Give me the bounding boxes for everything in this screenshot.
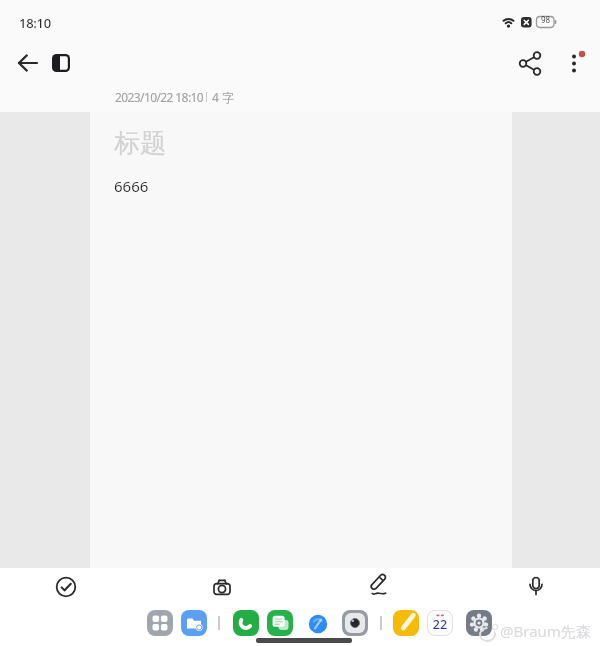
- button[interactable]: [233, 610, 259, 636]
- button[interactable]: [342, 610, 368, 636]
- button[interactable]: [267, 610, 293, 636]
- button[interactable]: [10, 45, 46, 81]
- button[interactable]: [512, 45, 548, 81]
- staticText: @Braum先森: [500, 621, 591, 641]
- button[interactable]: [44, 45, 80, 81]
- button[interactable]: [518, 569, 554, 605]
- button[interactable]: [181, 610, 207, 636]
- staticText: 6666: [114, 176, 149, 196]
- button[interactable]: [147, 610, 173, 636]
- button[interactable]: [360, 567, 396, 603]
- staticText: 标题: [114, 127, 166, 160]
- staticText: 4 字: [212, 89, 234, 105]
- staticText: 18:10: [19, 14, 51, 32]
- button[interactable]: [427, 610, 453, 636]
- button[interactable]: [556, 45, 592, 81]
- button[interactable]: [466, 610, 492, 636]
- staticText: 22: [427, 616, 453, 633]
- staticText: 98: [541, 14, 551, 25]
- button[interactable]: [48, 569, 84, 605]
- button[interactable]: [301, 610, 327, 636]
- button[interactable]: [203, 569, 239, 605]
- staticText: 2023/10/22 18:10: [115, 89, 204, 105]
- button[interactable]: [393, 610, 419, 636]
